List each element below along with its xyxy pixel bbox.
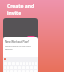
staticText: New Workout Plan?	[5, 40, 30, 44]
staticText: Create and	[7, 3, 35, 10]
button[interactable]	[27, 36, 35, 39]
staticText: invite	[7, 10, 22, 17]
staticText: Invite friends to join your session	[5, 45, 36, 51]
